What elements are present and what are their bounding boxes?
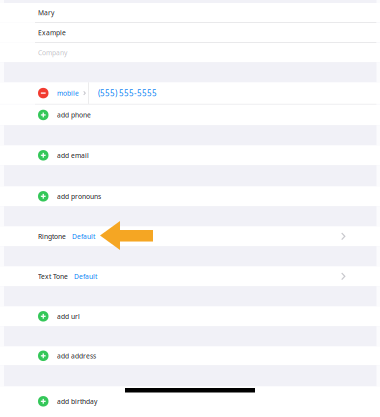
staticText: add email [57,151,89,160]
button[interactable]: Text Tone [0,266,380,286]
staticText: add url [57,312,80,321]
button[interactable]: add pronouns [0,186,380,206]
staticText: add address [57,351,96,360]
staticText: Ringtone [38,232,66,241]
button[interactable]: add birthday [0,386,380,416]
staticText: Text Tone [38,272,68,281]
staticText: Default [72,232,95,241]
staticText: add birthday [57,397,97,406]
button[interactable]: add url [0,306,380,326]
staticText: Default [74,272,97,281]
button[interactable]: add phone [0,105,380,125]
staticText: Mary [38,8,54,17]
staticText: mobile [57,89,79,98]
staticText: Example [38,28,66,37]
staticText: add phone [57,110,91,119]
button[interactable]: Ringtone [0,226,380,246]
button[interactable]: mobile [0,82,380,104]
button[interactable]: add email [0,145,380,165]
staticText: Company [38,48,67,57]
button[interactable]: add address [0,346,380,365]
staticText: (555) 555-5555 [98,88,157,98]
staticText: add pronouns [57,192,101,201]
